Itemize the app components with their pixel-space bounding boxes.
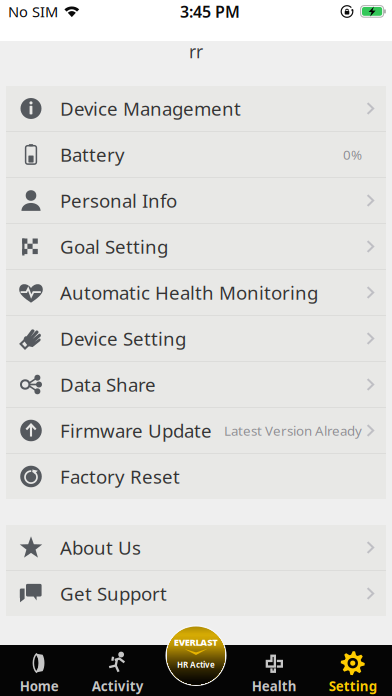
staticText: Setting [329,677,377,695]
button[interactable]: Activity [78,645,157,696]
staticText: Automatic Health Monitoring [60,280,318,305]
staticText: Factory Reset [60,464,180,489]
staticText: Latest Version Already [224,422,362,439]
staticText: rr [189,40,203,63]
staticText: Personal Info [60,188,177,213]
button[interactable]: Get Support [6,571,386,616]
button[interactable]: Setting [313,645,392,696]
button[interactable]: Home [0,645,78,696]
staticText: Data Share [60,372,156,397]
button[interactable]: Device Management [6,86,386,131]
button[interactable]: Battery [6,132,386,177]
staticText: Goal Setting [60,234,168,259]
button[interactable]: Personal Info [6,178,386,223]
staticText: Activity [92,677,144,695]
staticText: EVERLAST [174,636,218,648]
staticText: Device Setting [60,326,186,351]
button[interactable]: Firmware Update [6,408,386,453]
button[interactable]: Data Share [6,362,386,407]
button[interactable]: Health [235,645,313,696]
staticText: Firmware Update [60,418,212,443]
button[interactable]: Device Setting [6,316,386,361]
button[interactable]: Factory Reset [6,454,386,499]
staticText: HR Active [177,659,215,670]
button[interactable]: Goal Setting [6,224,386,269]
staticText: 0% [343,146,362,163]
staticText: Battery [60,142,125,167]
button[interactable]: Automatic Health Monitoring [6,270,386,315]
staticText: Device Management [60,96,241,121]
staticText: Home [20,677,59,695]
staticText: 3:45 PM [180,1,240,22]
staticText: About Us [60,535,141,560]
staticText: No SIM [8,2,58,21]
button[interactable]: Everlast HR Active [165,625,226,686]
staticText: Health [252,677,297,695]
button[interactable]: rr [0,41,392,86]
staticText: Get Support [60,581,167,606]
button[interactable]: About Us [6,525,386,570]
